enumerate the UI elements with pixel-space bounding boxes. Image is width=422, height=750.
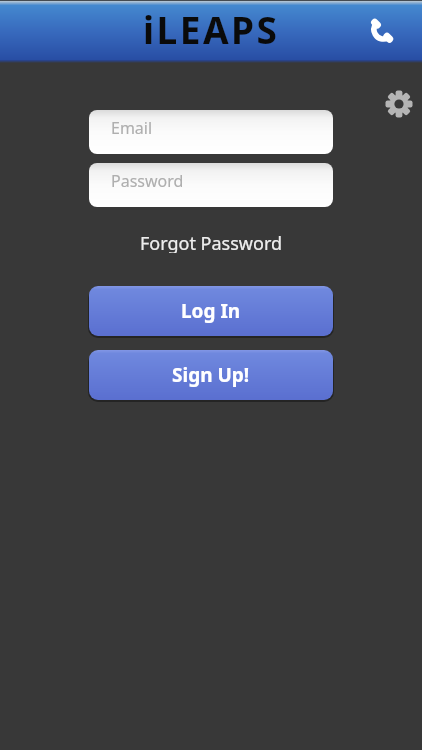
button[interactable]: Email <box>89 110 333 154</box>
button[interactable] <box>385 90 413 118</box>
staticText: Sign Up! <box>172 362 250 388</box>
button[interactable]: Log In <box>89 286 333 336</box>
button[interactable]: Password <box>89 163 333 207</box>
staticText: Forgot Password <box>140 231 283 253</box>
button[interactable]: Sign Up! <box>89 350 333 400</box>
staticText: Password <box>111 170 184 192</box>
staticText: Email <box>111 117 153 139</box>
staticText: iLEAPS <box>143 4 280 54</box>
button[interactable] <box>368 15 398 45</box>
staticText: Log In <box>181 298 241 324</box>
button[interactable]: Forgot Password <box>140 231 283 253</box>
